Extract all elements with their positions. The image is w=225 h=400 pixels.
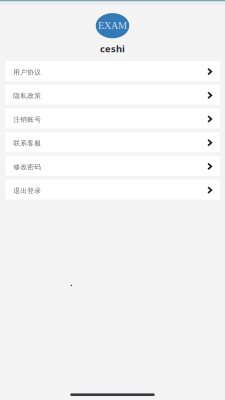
button[interactable]: 用户协议: [5, 61, 220, 81]
staticText: ceshi: [100, 42, 125, 55]
staticText: 退出登录: [13, 187, 41, 195]
button[interactable]: 注销账号: [5, 108, 220, 128]
staticText: 联系客服: [13, 139, 41, 147]
staticText: 修改密码: [13, 163, 41, 171]
staticText: 用户协议: [13, 68, 41, 76]
button[interactable]: 退出登录: [5, 179, 220, 199]
staticText: 注销账号: [13, 115, 41, 124]
staticText: EXAM: [98, 20, 127, 31]
staticText: 隐私政策: [13, 92, 41, 100]
button[interactable]: 隐私政策: [5, 85, 220, 105]
button[interactable]: 联系客服: [5, 132, 220, 152]
button[interactable]: 修改密码: [5, 156, 220, 176]
